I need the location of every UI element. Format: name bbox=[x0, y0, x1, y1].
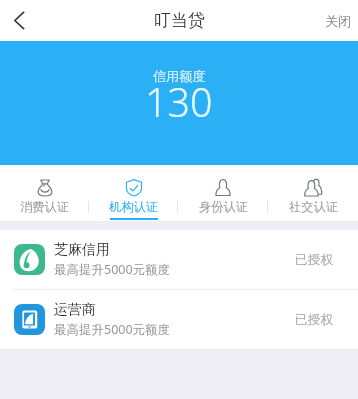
staticText: 社交认证 bbox=[289, 199, 338, 214]
button[interactable]: 芝麻信用 bbox=[0, 230, 358, 289]
staticText: 已授权 bbox=[295, 312, 334, 328]
staticText: 消费认证 bbox=[20, 199, 69, 214]
button[interactable]: Back bbox=[0, 0, 38, 41]
staticText: 已授权 bbox=[295, 252, 334, 268]
staticText: 最高提升5000元额度 bbox=[54, 261, 171, 278]
staticText: 叮当贷 bbox=[154, 10, 205, 31]
button[interactable]: 关闭 bbox=[325, 0, 358, 41]
staticText: 运营商 bbox=[54, 301, 96, 319]
staticText: 机构认证 bbox=[109, 199, 158, 214]
staticText: 芝麻信用 bbox=[54, 241, 110, 259]
staticText: 130 bbox=[145, 75, 213, 129]
button[interactable]: 运营商 bbox=[0, 290, 358, 349]
button[interactable]: 社交认证 bbox=[268, 165, 358, 221]
staticText: 最高提升5000元额度 bbox=[54, 321, 171, 338]
staticText: 信用额度 bbox=[153, 68, 206, 85]
button[interactable]: 机构认证 bbox=[89, 165, 178, 221]
staticText: 关闭 bbox=[325, 13, 351, 29]
button[interactable]: 身份认证 bbox=[178, 165, 268, 221]
staticText: 身份认证 bbox=[199, 199, 248, 214]
button[interactable]: 消费认证 bbox=[0, 165, 89, 221]
